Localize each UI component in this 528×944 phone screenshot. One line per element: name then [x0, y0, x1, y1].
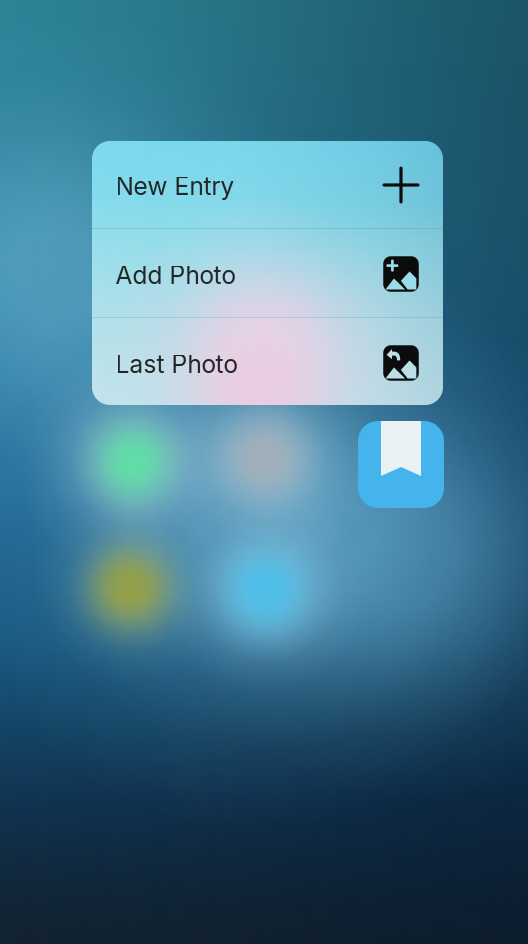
- button[interactable]: Last Photo: [92, 318, 443, 406]
- button[interactable]: New Entry: [92, 140, 443, 228]
- staticText: Add Photo: [115, 260, 235, 290]
- button[interactable]: Add Photo: [92, 229, 443, 317]
- staticText: Last Photo: [115, 349, 237, 379]
- staticText: New Entry: [115, 171, 234, 201]
